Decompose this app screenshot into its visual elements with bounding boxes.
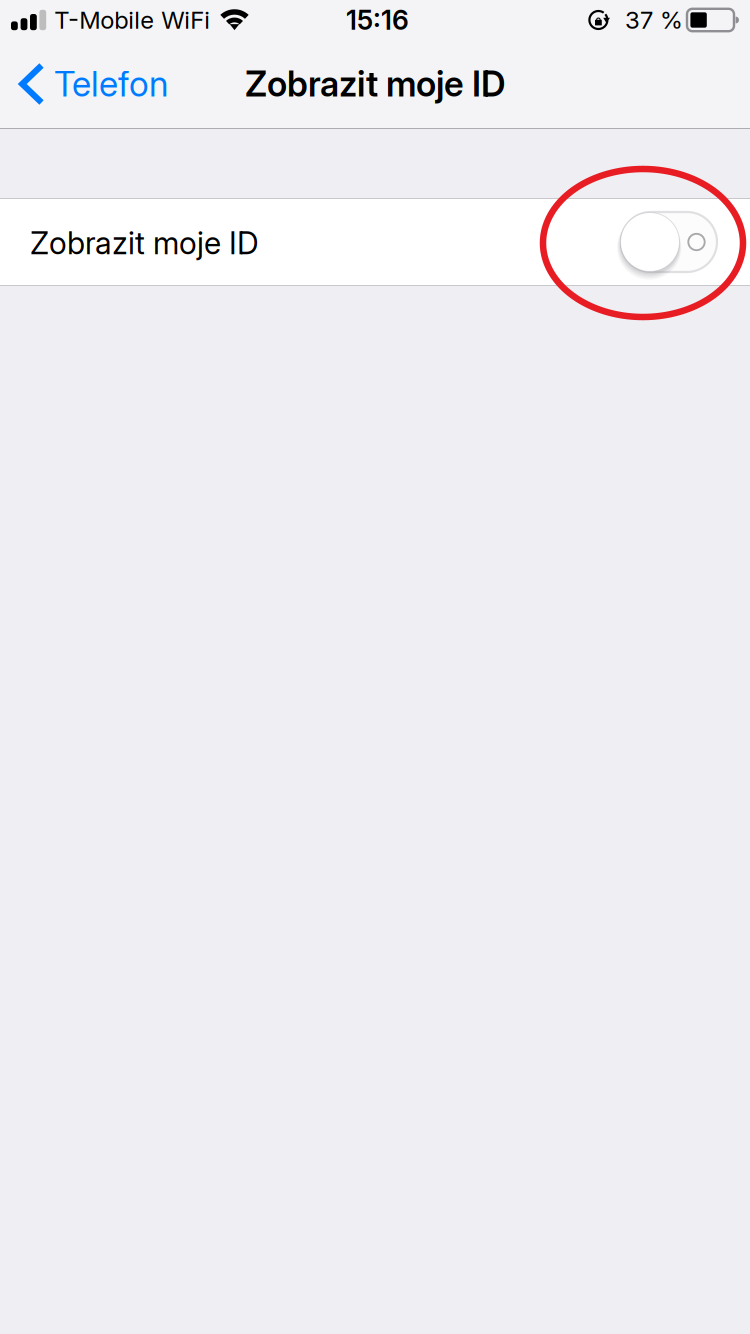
- button[interactable]: Telefon: [0, 41, 180, 127]
- staticText: T-Mobile WiFi: [54, 5, 210, 34]
- staticText: Telefon: [54, 63, 168, 105]
- button[interactable]: Zobrazit moje ID: [0, 199, 750, 285]
- staticText: Zobrazit moje ID: [245, 63, 505, 105]
- staticText: Zobrazit moje ID: [30, 224, 259, 261]
- staticText: 37 %: [625, 5, 683, 34]
- button[interactable]: Zobrazit moje ID: [620, 206, 718, 278]
- staticText: 15:16: [346, 4, 409, 36]
